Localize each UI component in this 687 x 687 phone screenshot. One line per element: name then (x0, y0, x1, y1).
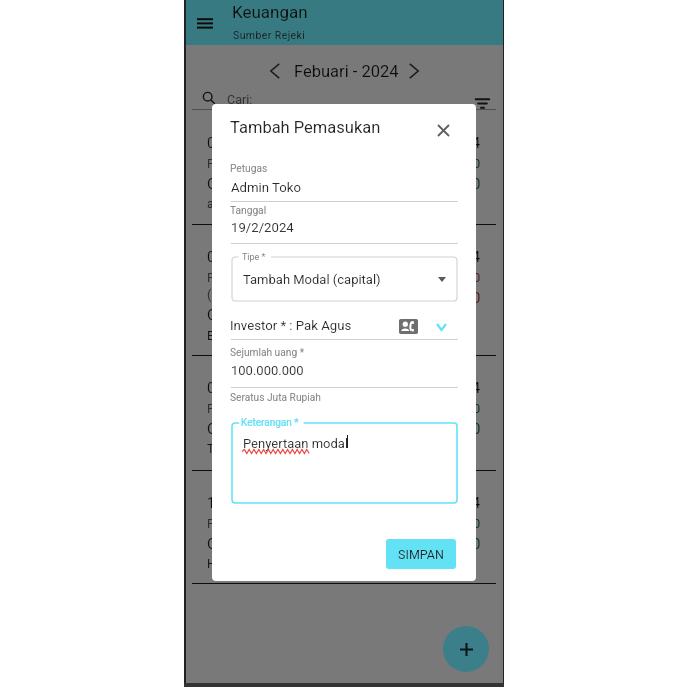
staticText: Oke (207, 176, 232, 193)
staticText: Penyertaan modal (243, 436, 349, 451)
staticText: Rp 3.530.000 (395, 421, 481, 438)
staticText: Edi (207, 328, 225, 343)
button[interactable]: 05/02/2024 (184, 224, 504, 336)
staticText: 100.000.000 (231, 363, 304, 378)
staticText: admin (207, 196, 242, 211)
staticText: Pengeluaran (207, 270, 277, 285)
staticText: 120.000 (433, 270, 481, 285)
button[interactable]: 09/02/2024 (184, 355, 504, 467)
staticText: 03/02/2024 (207, 135, 285, 152)
staticText: 100.000 (433, 516, 481, 531)
staticText: Tambah Modal (capital) (243, 272, 381, 287)
staticText: 250.000 (433, 156, 481, 171)
staticText: Keuangan (232, 2, 308, 22)
staticText: Oke (207, 421, 232, 438)
staticText: Investor * : Pak Agus (230, 318, 352, 333)
staticText: Rp 3.330.000 (395, 290, 481, 307)
staticText: Petugas (230, 163, 268, 175)
staticText: Pemasukan (207, 156, 273, 171)
button[interactable]: Filter (469, 90, 495, 116)
button[interactable]: Add transaction (443, 626, 489, 672)
staticText: Rp 3.630.000 (395, 536, 481, 553)
staticText: 09/02/2024 (207, 380, 285, 397)
staticText: Oke (207, 536, 232, 553)
button[interactable]: Cari: (196, 88, 486, 110)
staticText: 09/02/2024 (403, 380, 481, 397)
button[interactable]: 12/02/2024 (184, 470, 504, 582)
staticText: Pemasukan (207, 516, 273, 531)
staticText: 05/02/2024 (403, 249, 481, 266)
staticText: Rp 3.450.000 (395, 176, 481, 193)
staticText: Admin Toko (231, 180, 302, 195)
button[interactable]: Investor * : Pak Agus (228, 313, 456, 341)
staticText: Hasil (207, 556, 236, 571)
staticText: Keterangan * (241, 417, 299, 429)
staticText: Oke (207, 307, 232, 324)
staticText: 19/2/2024 (231, 220, 294, 235)
staticText: 200.000 (433, 401, 481, 416)
staticText: Sumber Rejeki (233, 29, 306, 41)
button[interactable]: Next month (399, 56, 429, 86)
staticText: Tunai (207, 441, 238, 456)
staticText: 03/02/2024 (403, 135, 481, 152)
button[interactable]: Open navigation menu (187, 5, 223, 41)
button[interactable]: Previous month (260, 56, 290, 86)
staticText: 12/02/2024 (403, 495, 481, 512)
staticText: Seratus Juta Rupiah (230, 392, 321, 404)
staticText: Tanggal (230, 205, 267, 217)
staticText: Tipe * (242, 252, 266, 263)
button[interactable]: 03/02/2024 (184, 110, 504, 222)
button[interactable]: SIMPAN (386, 539, 456, 569)
staticText: 05/02/2024 (207, 249, 285, 266)
staticText: Sejumlah uang * (230, 347, 305, 359)
staticText: Pemasukan (207, 401, 273, 416)
staticText: Cari: (227, 92, 253, 107)
staticText: (beli kopi) (207, 287, 262, 302)
staticText: SIMPAN (398, 547, 444, 562)
staticText: 12/02/2024 (207, 495, 285, 512)
button[interactable]: Close dialog (425, 112, 461, 148)
staticText: Tambah Pemasukan (230, 118, 381, 137)
staticText: Febuari - 2024 (294, 62, 399, 81)
